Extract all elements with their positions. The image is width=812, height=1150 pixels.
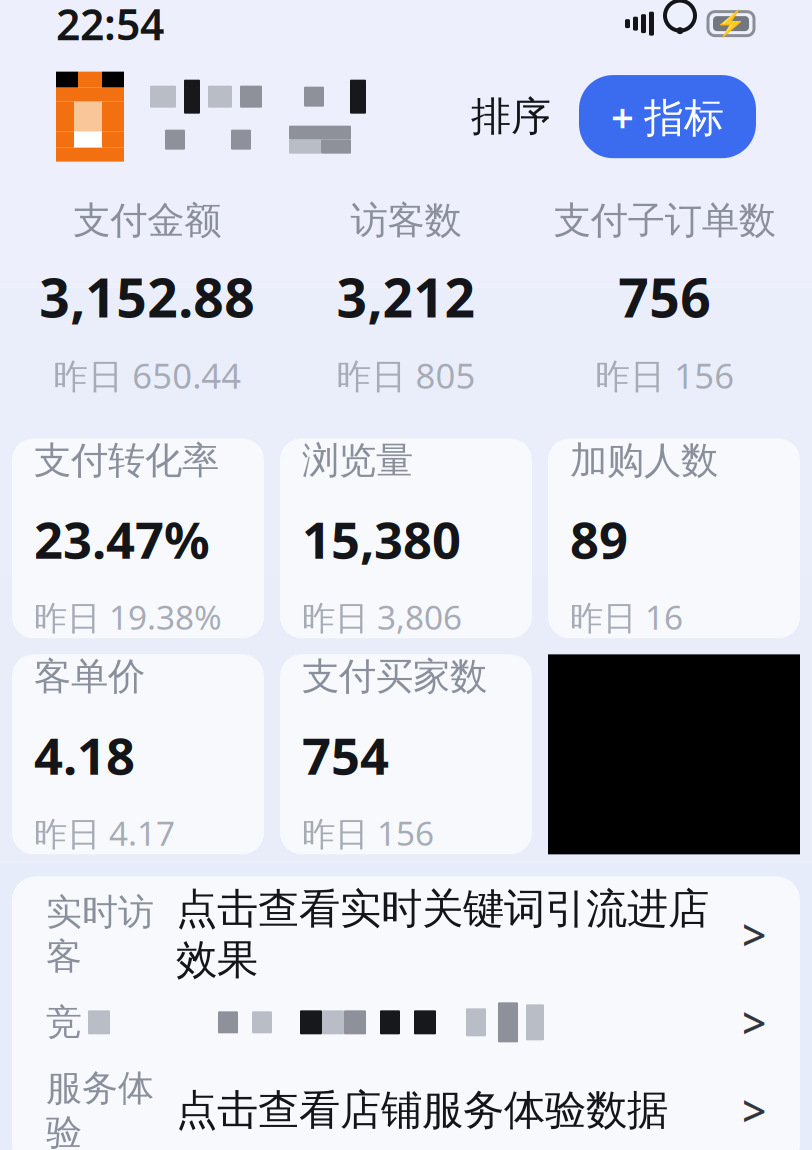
staticText: 4.18 xyxy=(34,721,135,789)
button[interactable]: 浏览量 xyxy=(280,438,532,638)
staticText: 昨日 156 xyxy=(595,352,734,398)
staticText: 754 xyxy=(302,721,389,789)
staticText: 3,212 xyxy=(336,261,475,332)
staticText: > xyxy=(742,994,766,1051)
staticText: 支付金额 xyxy=(73,198,221,243)
staticText: 昨日 650.44 xyxy=(53,352,241,398)
button[interactable]: 排序 xyxy=(465,84,557,149)
staticText: 89 xyxy=(570,505,628,573)
staticText: 访客数 xyxy=(350,198,461,243)
button[interactable]: 加购人数 xyxy=(548,438,800,638)
button[interactable]: 实时访客 xyxy=(12,890,800,978)
button[interactable]: 客单价 xyxy=(12,654,264,854)
staticText: > xyxy=(742,906,766,963)
staticText: 15,380 xyxy=(302,505,461,573)
staticText: ⚡ xyxy=(715,9,747,38)
staticText: 22:54 xyxy=(56,0,164,52)
staticText: 昨日 19.38% xyxy=(34,595,222,639)
staticText: 昨日 156 xyxy=(302,811,434,855)
staticText: 支付子订单数 xyxy=(554,198,776,243)
button[interactable]: 支付转化率 xyxy=(12,438,264,638)
staticText: 昨日 805 xyxy=(336,352,475,398)
staticText: 加购人数 xyxy=(570,438,718,484)
staticText: 竞 xyxy=(46,1000,82,1044)
button[interactable]: + 指标 xyxy=(579,75,756,158)
staticText: 客单价 xyxy=(34,654,145,700)
staticText: 3,152.88 xyxy=(39,261,255,332)
staticText: 点击查看店铺服务体验数据 xyxy=(176,1085,668,1136)
staticText: 点击查看实时关键词引流进店效果 xyxy=(176,884,709,985)
staticText: 昨日 3,806 xyxy=(302,595,462,639)
staticText: + 指标 xyxy=(611,90,724,143)
button[interactable]: 竞 xyxy=(12,978,800,1066)
staticText: 756 xyxy=(618,261,711,332)
staticText: 服务体验 xyxy=(46,1066,154,1150)
staticText: 昨日 4.17 xyxy=(34,811,175,855)
button[interactable]: 支付买家数 xyxy=(280,654,532,854)
staticText: 昨日 16 xyxy=(570,595,683,639)
staticText: > xyxy=(742,1082,766,1139)
staticText: 23.47% xyxy=(34,505,210,573)
staticText: 支付转化率 xyxy=(34,438,219,484)
button[interactable]: 服务体验 xyxy=(12,1066,800,1150)
staticText: 浏览量 xyxy=(302,438,413,484)
staticText: 支付买家数 xyxy=(302,654,487,700)
staticText: 实时访客 xyxy=(46,890,154,978)
staticText: 排序 xyxy=(471,92,551,141)
